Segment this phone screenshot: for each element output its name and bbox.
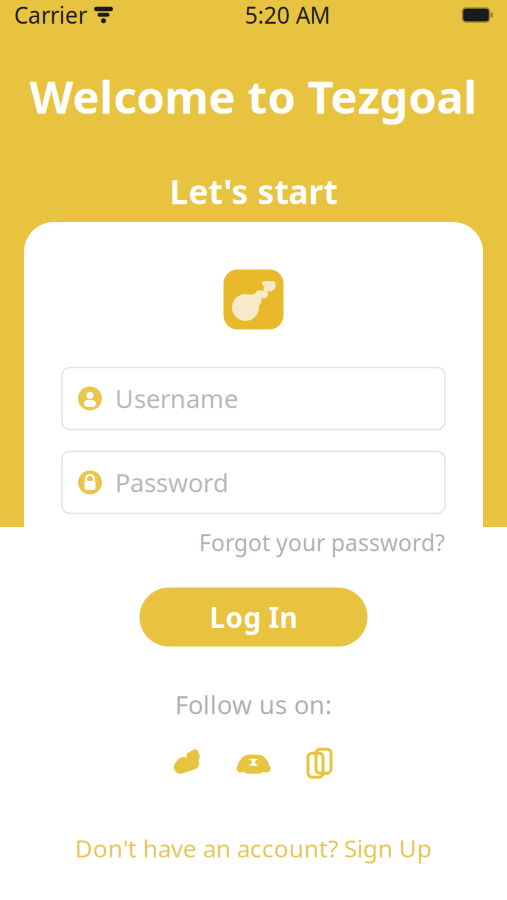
button[interactable]: Username xyxy=(62,367,445,429)
button[interactable]: Don't have an account? Sign Up xyxy=(75,832,432,864)
button[interactable]: Log In xyxy=(139,588,367,647)
staticText: Welcome to Tezgoal xyxy=(29,66,477,126)
staticText: Password xyxy=(115,466,229,499)
button[interactable]: PayPal xyxy=(303,748,335,778)
staticText: Don't have an account? Sign Up xyxy=(75,832,432,864)
button[interactable]: Discord xyxy=(237,749,269,777)
staticText: Let's start xyxy=(169,169,337,213)
staticText: 5:20 AM xyxy=(245,0,331,30)
button[interactable]: Twitter xyxy=(171,749,203,777)
button[interactable]: Password xyxy=(62,451,445,513)
staticText: Follow us on: xyxy=(175,688,332,721)
staticText: Carrier xyxy=(14,0,87,30)
staticText: Forgot your password? xyxy=(199,527,445,558)
staticText: Log In xyxy=(209,598,297,636)
staticText: Username xyxy=(115,382,238,415)
button[interactable]: Forgot your password? xyxy=(199,527,445,558)
